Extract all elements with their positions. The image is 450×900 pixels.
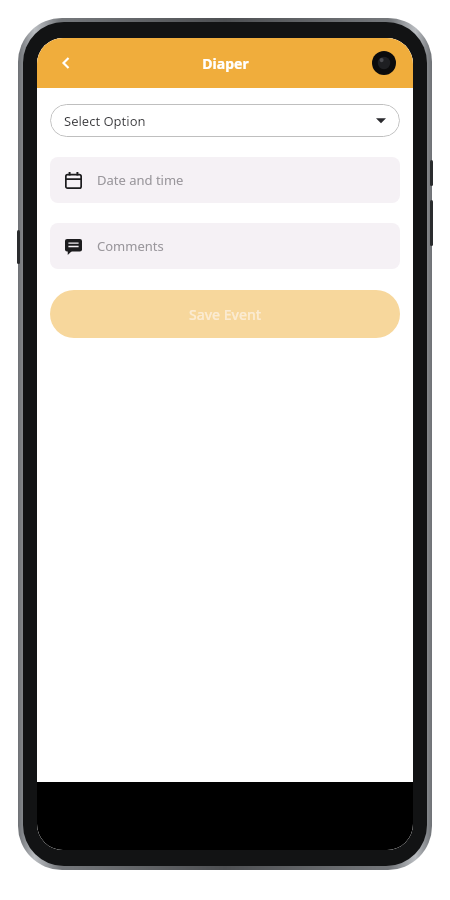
button[interactable]: Add comments	[50, 223, 400, 269]
button[interactable]: Save Event	[50, 290, 400, 338]
staticText: Select Option	[64, 112, 146, 130]
button[interactable]: Select Option	[50, 104, 400, 137]
staticText: Diaper	[202, 54, 249, 73]
button[interactable]: Back	[47, 44, 85, 82]
staticText: Date and time	[97, 171, 184, 189]
staticText: Comments	[97, 237, 164, 255]
staticText: Save Event	[189, 305, 262, 324]
button[interactable]: Pick date and time	[50, 157, 400, 203]
